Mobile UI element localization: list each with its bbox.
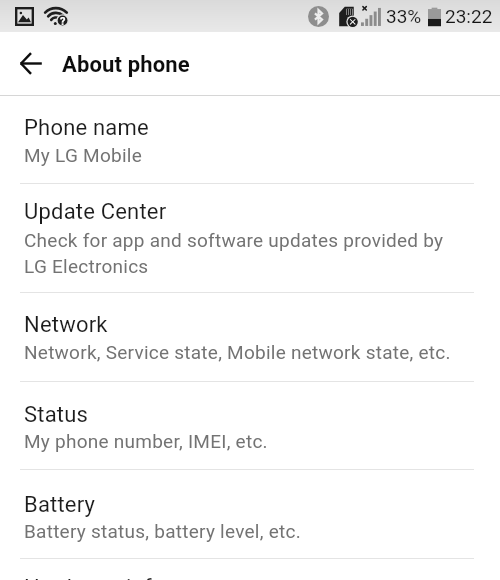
staticText: ?	[60, 15, 66, 26]
staticText: My phone number, IMEI, etc.	[24, 427, 268, 453]
staticText: Battery status, battery level, etc.	[24, 517, 301, 543]
staticText: Status	[24, 401, 89, 427]
button[interactable]: Network	[0, 293, 500, 381]
button[interactable]: Battery	[0, 470, 500, 558]
button[interactable]: Hardware info	[0, 559, 500, 580]
staticText: Network	[24, 311, 108, 337]
staticText: 33%	[386, 5, 422, 27]
staticText: Update Center	[24, 198, 167, 224]
button[interactable]: Phone name	[0, 96, 500, 183]
button[interactable]: Status	[0, 382, 500, 469]
staticText: My LG Mobile	[24, 141, 142, 167]
staticText: Hardware info	[24, 574, 165, 580]
button[interactable]: Update Center	[0, 184, 500, 292]
staticText: Network, Service state, Mobile network s…	[24, 338, 451, 364]
staticText: 23:22	[445, 5, 493, 27]
staticText: About phone	[62, 51, 190, 77]
staticText: Battery	[24, 491, 96, 517]
staticText: Check for app and software updates provi…	[24, 226, 456, 278]
button[interactable]: Back	[0, 32, 62, 95]
staticText: Phone name	[24, 114, 149, 140]
